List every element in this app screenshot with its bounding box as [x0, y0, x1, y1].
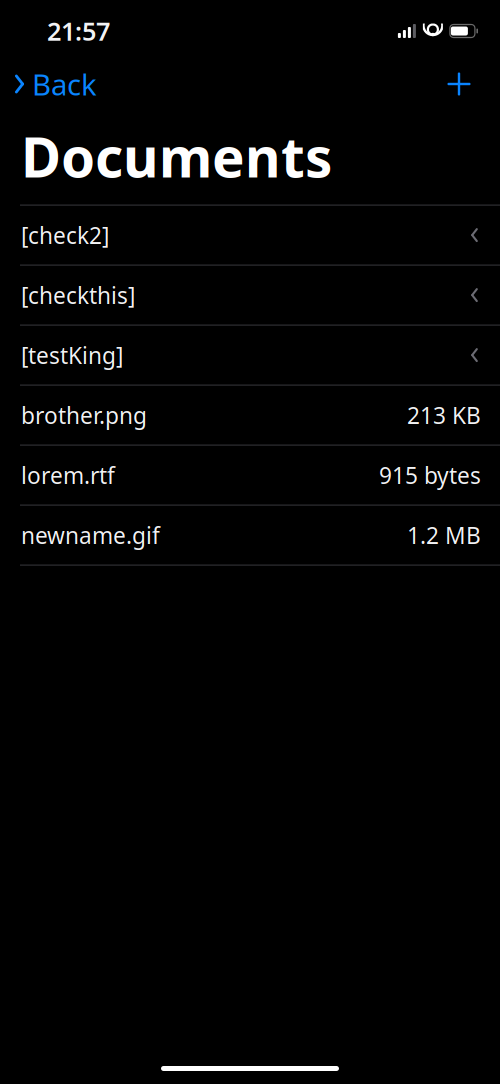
staticText: brother.png	[21, 400, 147, 430]
button[interactable]: brother.png	[0, 386, 500, 445]
staticText: [check2]	[21, 220, 109, 250]
button[interactable]: [check2]	[0, 206, 500, 265]
button[interactable]: [testKing]	[0, 326, 500, 385]
button[interactable]: Add	[437, 64, 481, 104]
staticText: 915 bytes	[379, 460, 481, 490]
button[interactable]: [checkthis]	[0, 266, 500, 325]
staticText: 1.2 MB	[407, 520, 481, 550]
staticText: Back	[32, 64, 97, 103]
staticText: lorem.rtf	[21, 460, 115, 490]
staticText: 213 KB	[407, 400, 481, 430]
staticText: [testKing]	[21, 340, 123, 370]
button[interactable]: Back	[0, 56, 107, 111]
button[interactable]: lorem.rtf	[0, 446, 500, 505]
button[interactable]: newname.gif	[0, 506, 500, 565]
staticText: 21:57	[47, 14, 110, 48]
staticText: [checkthis]	[21, 280, 135, 310]
staticText: newname.gif	[21, 520, 160, 550]
staticText: Documents	[21, 120, 332, 193]
